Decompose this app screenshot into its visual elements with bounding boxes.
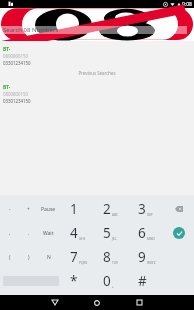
staticText: * [70,272,78,290]
staticText: 3 [138,200,146,218]
staticText: 9:08 [182,1,192,8]
staticText: # [138,272,147,290]
button[interactable]: 0 [93,269,128,293]
staticText: - [9,206,11,213]
button[interactable]: 2 [93,197,128,221]
staticText: 03301234150 [3,60,31,66]
staticText: 9 [138,248,146,266]
staticText: . [28,230,30,237]
staticText: + [112,285,114,289]
staticText: , [9,230,11,237]
button[interactable]: 9 [128,245,163,269]
staticText: ABC [112,213,119,217]
staticText: JKL [112,237,117,241]
button[interactable]: 7 [60,245,93,269]
staticText: 6 [138,224,146,242]
button[interactable]: Home [86,295,108,310]
button[interactable]: Back [44,295,66,310]
button[interactable]: N [37,245,60,269]
staticText: TUV [112,261,119,265]
staticText: Wait [43,230,54,237]
button[interactable]: Recents [128,295,150,310]
staticText: 4 [70,224,78,242]
staticText: N [47,254,51,261]
button[interactable]: Search 08 Numbers [0,26,187,34]
staticText: 8 [103,248,111,266]
staticText: 03301234150 [3,98,31,104]
staticText: Pause [41,206,56,213]
button[interactable]: * [60,269,93,293]
button[interactable]: 4 [60,221,93,245]
staticText: ) [28,254,30,261]
button[interactable]: 5 [93,221,128,245]
staticText: BT- [3,84,11,91]
button[interactable]: Pause [37,197,60,221]
staticText: BT- [3,46,11,53]
staticText: 0800800150 [3,53,29,59]
button[interactable]: 3 [128,197,163,221]
button[interactable]: # [128,269,163,293]
button[interactable]: BT- [0,84,194,104]
staticText: ( [9,254,11,261]
staticText: 1 [70,200,78,218]
staticText: WXYZ [147,261,156,265]
staticText: 2 [103,200,111,218]
staticText: 0800800150 [3,91,29,97]
staticText: GHI [79,237,85,241]
staticText: MNO [147,237,155,241]
button[interactable]: Wait [37,221,60,245]
button[interactable]: Done [173,227,185,239]
staticText: Previous Searches [78,70,116,76]
button[interactable]: + [20,197,37,221]
staticText: Search 08 Numbers [3,26,59,34]
button[interactable]: ) [20,245,37,269]
staticText: DEF [147,213,153,217]
button[interactable]: Backspace [163,197,194,221]
staticText: + [27,206,30,213]
staticText: 5 [103,224,111,242]
staticText: 7 [70,248,78,266]
button[interactable]: ( [0,245,20,269]
other: Backspace [175,206,183,212]
button[interactable]: 1 [60,197,93,221]
button[interactable]: 6 [128,221,163,245]
button[interactable]: Done [163,221,194,245]
staticText: 0 [103,272,111,290]
button[interactable]: BT- [0,46,194,66]
button[interactable]: 8 [93,245,128,269]
staticText: PQRS [79,261,88,265]
